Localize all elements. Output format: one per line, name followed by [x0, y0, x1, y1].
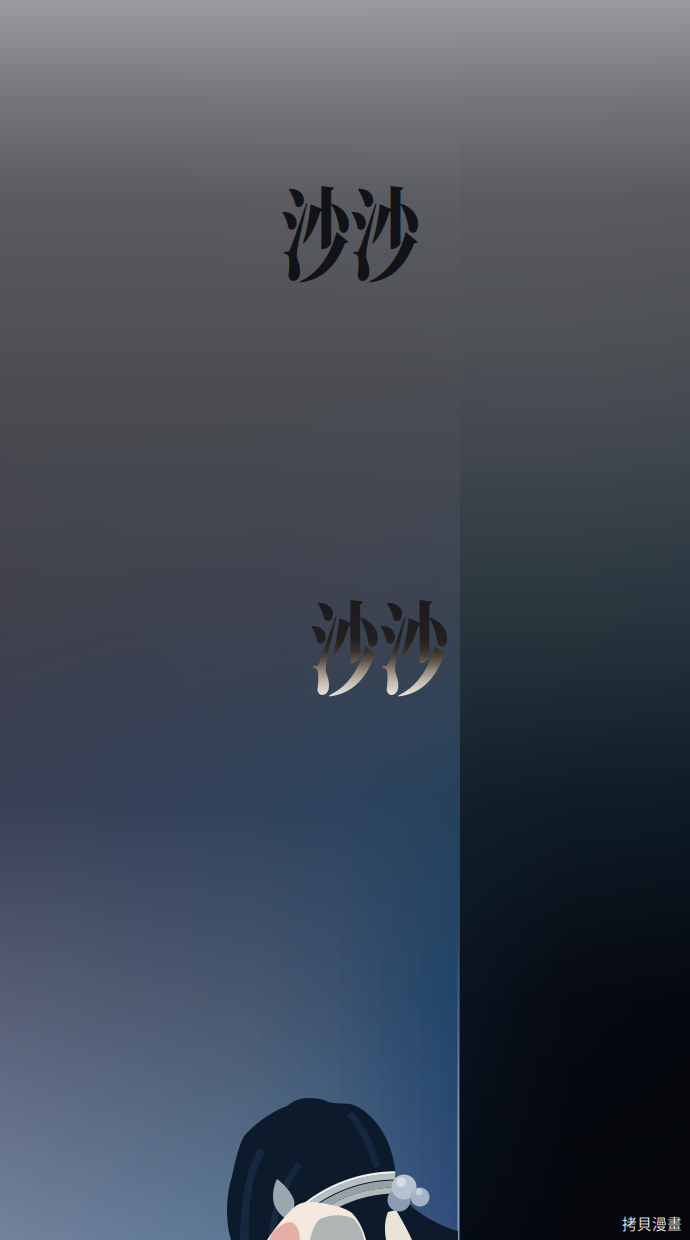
staticText: 拷貝漫畫: [622, 1212, 682, 1234]
staticText: 沙沙: [249, 156, 451, 302]
button[interactable]: 沙沙: [0, 0, 690, 1240]
